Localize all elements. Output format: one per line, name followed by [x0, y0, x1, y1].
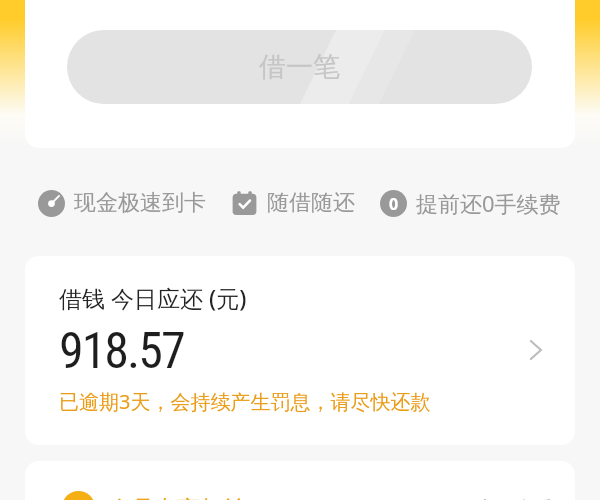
- staticText: 已逾期3天，会持续产生罚息，请尽快还款: [59, 388, 431, 415]
- button[interactable]: 借一笔: [67, 30, 532, 104]
- staticText: 提前还0手续费: [416, 188, 561, 218]
- staticText: 借钱 今日应还 (元): [59, 282, 247, 313]
- staticText: 918.57: [59, 322, 184, 381]
- button[interactable]: 借钱 今日应还 (元): [25, 256, 575, 445]
- button[interactable]: 会员专享权益: [25, 461, 575, 500]
- staticText: 立即查看: [477, 497, 553, 500]
- staticText: 随借随还: [267, 189, 355, 217]
- staticText: 借一笔: [259, 50, 340, 84]
- staticText: 现金极速到卡: [74, 189, 206, 217]
- staticText: 0: [389, 193, 399, 215]
- other: 查看详情: [523, 336, 551, 364]
- staticText: 会员专享权益: [108, 495, 246, 500]
